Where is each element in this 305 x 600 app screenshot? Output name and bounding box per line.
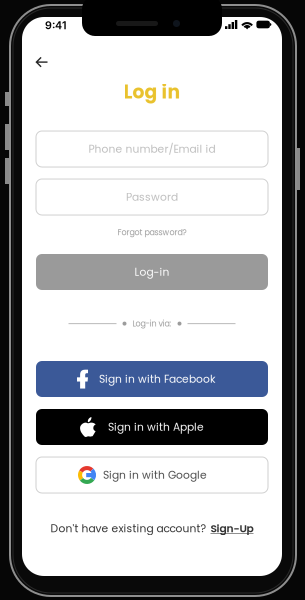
button[interactable]: Phone number/Email id [36, 131, 268, 167]
staticText: Phone number/Email id [88, 141, 215, 156]
button[interactable]: Back [28, 49, 56, 75]
button[interactable]: Sign in with Facebook [36, 361, 268, 397]
staticText: Log-in via: [132, 318, 171, 329]
button[interactable]: Sign-Up [210, 521, 253, 536]
staticText: Log-in [134, 264, 169, 279]
staticText: Don't have existing account? [50, 521, 206, 536]
staticText: Sign in with Google [103, 467, 207, 482]
staticText: Forgot password? [117, 227, 186, 238]
staticText: Sign in with Facebook [99, 371, 215, 386]
staticText: 9:41 [45, 19, 67, 32]
staticText: Sign-Up [210, 521, 253, 536]
button[interactable]: Sign in with Apple [36, 409, 268, 445]
staticText: Sign in with Apple [108, 419, 204, 434]
button[interactable]: Password [36, 179, 268, 215]
button[interactable]: Log-in [36, 254, 268, 290]
button[interactable]: Sign in with Google [36, 457, 268, 493]
staticText: Password [126, 189, 178, 204]
button[interactable]: Forgot password? [22, 226, 282, 239]
staticText: Log in [123, 79, 180, 105]
